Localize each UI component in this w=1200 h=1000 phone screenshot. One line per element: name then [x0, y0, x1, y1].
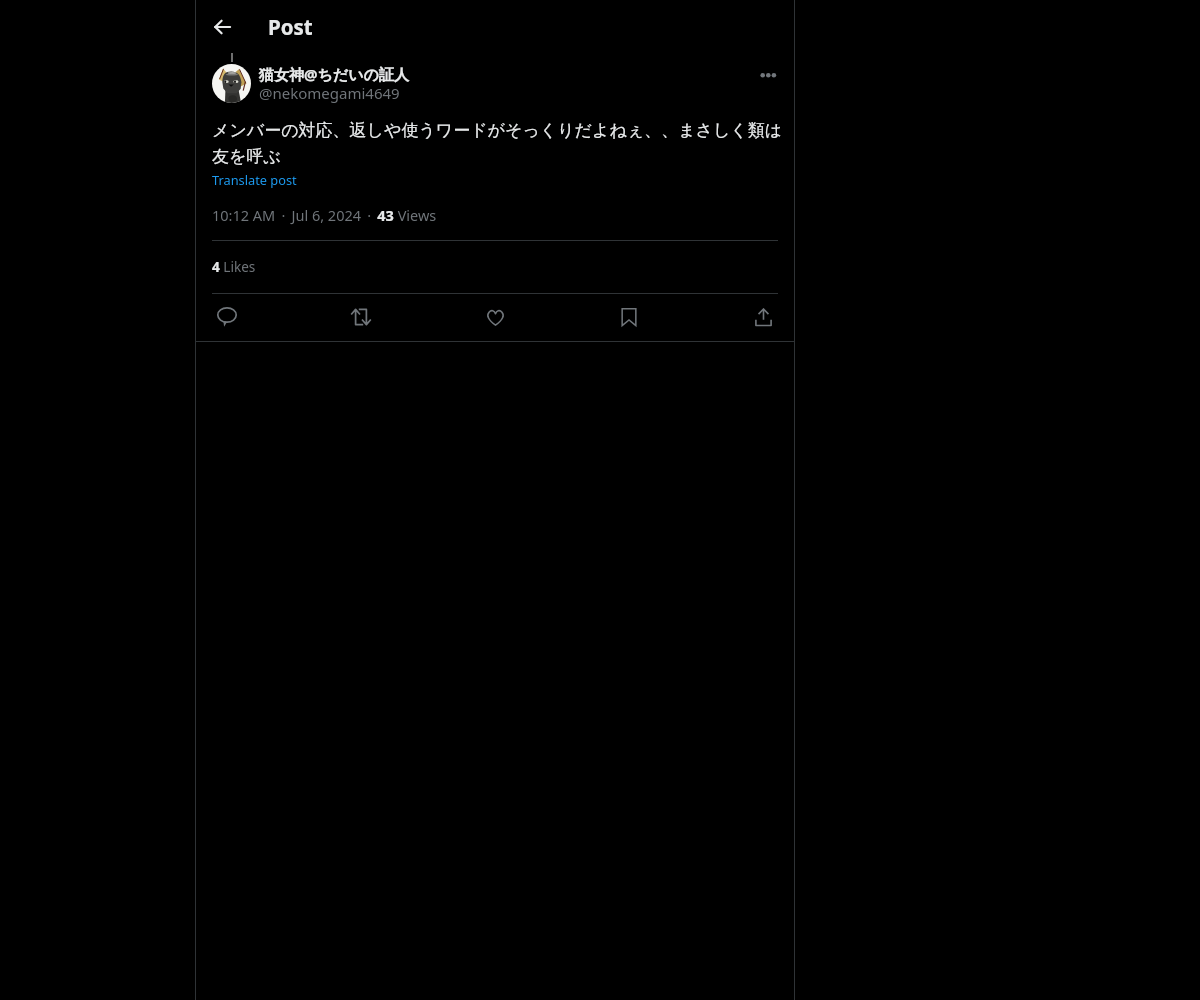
- button[interactable]: Back: [208, 13, 236, 41]
- staticText: Translate post: [212, 171, 297, 188]
- button[interactable]: Translate post: [212, 170, 298, 188]
- button[interactable]: 猫女神@ちだいの証人: [259, 63, 459, 103]
- button[interactable]: Like: [479, 301, 511, 333]
- staticText: Post: [268, 13, 313, 41]
- button[interactable]: Reply: [211, 301, 243, 333]
- button[interactable]: Profile picture: [212, 64, 251, 103]
- staticText: 4 Likes: [212, 257, 256, 276]
- button[interactable]: 4 Likes: [212, 255, 260, 277]
- button[interactable]: Repost: [345, 301, 377, 333]
- staticText: @nekomegami4649: [259, 83, 400, 103]
- button[interactable]: More options: [754, 61, 783, 90]
- button[interactable]: Bookmark: [613, 301, 645, 333]
- staticText: 10:12 AM · Jul 6, 2024 · 43 Views: [212, 205, 437, 225]
- button[interactable]: Share: [747, 301, 779, 333]
- staticText: メンバーの対応、返しや使うワードがそっくりだよねぇ、、まさしく類は 友を呼ぶ: [212, 120, 783, 167]
- staticText: 猫女神@ちだいの証人: [259, 64, 409, 84]
